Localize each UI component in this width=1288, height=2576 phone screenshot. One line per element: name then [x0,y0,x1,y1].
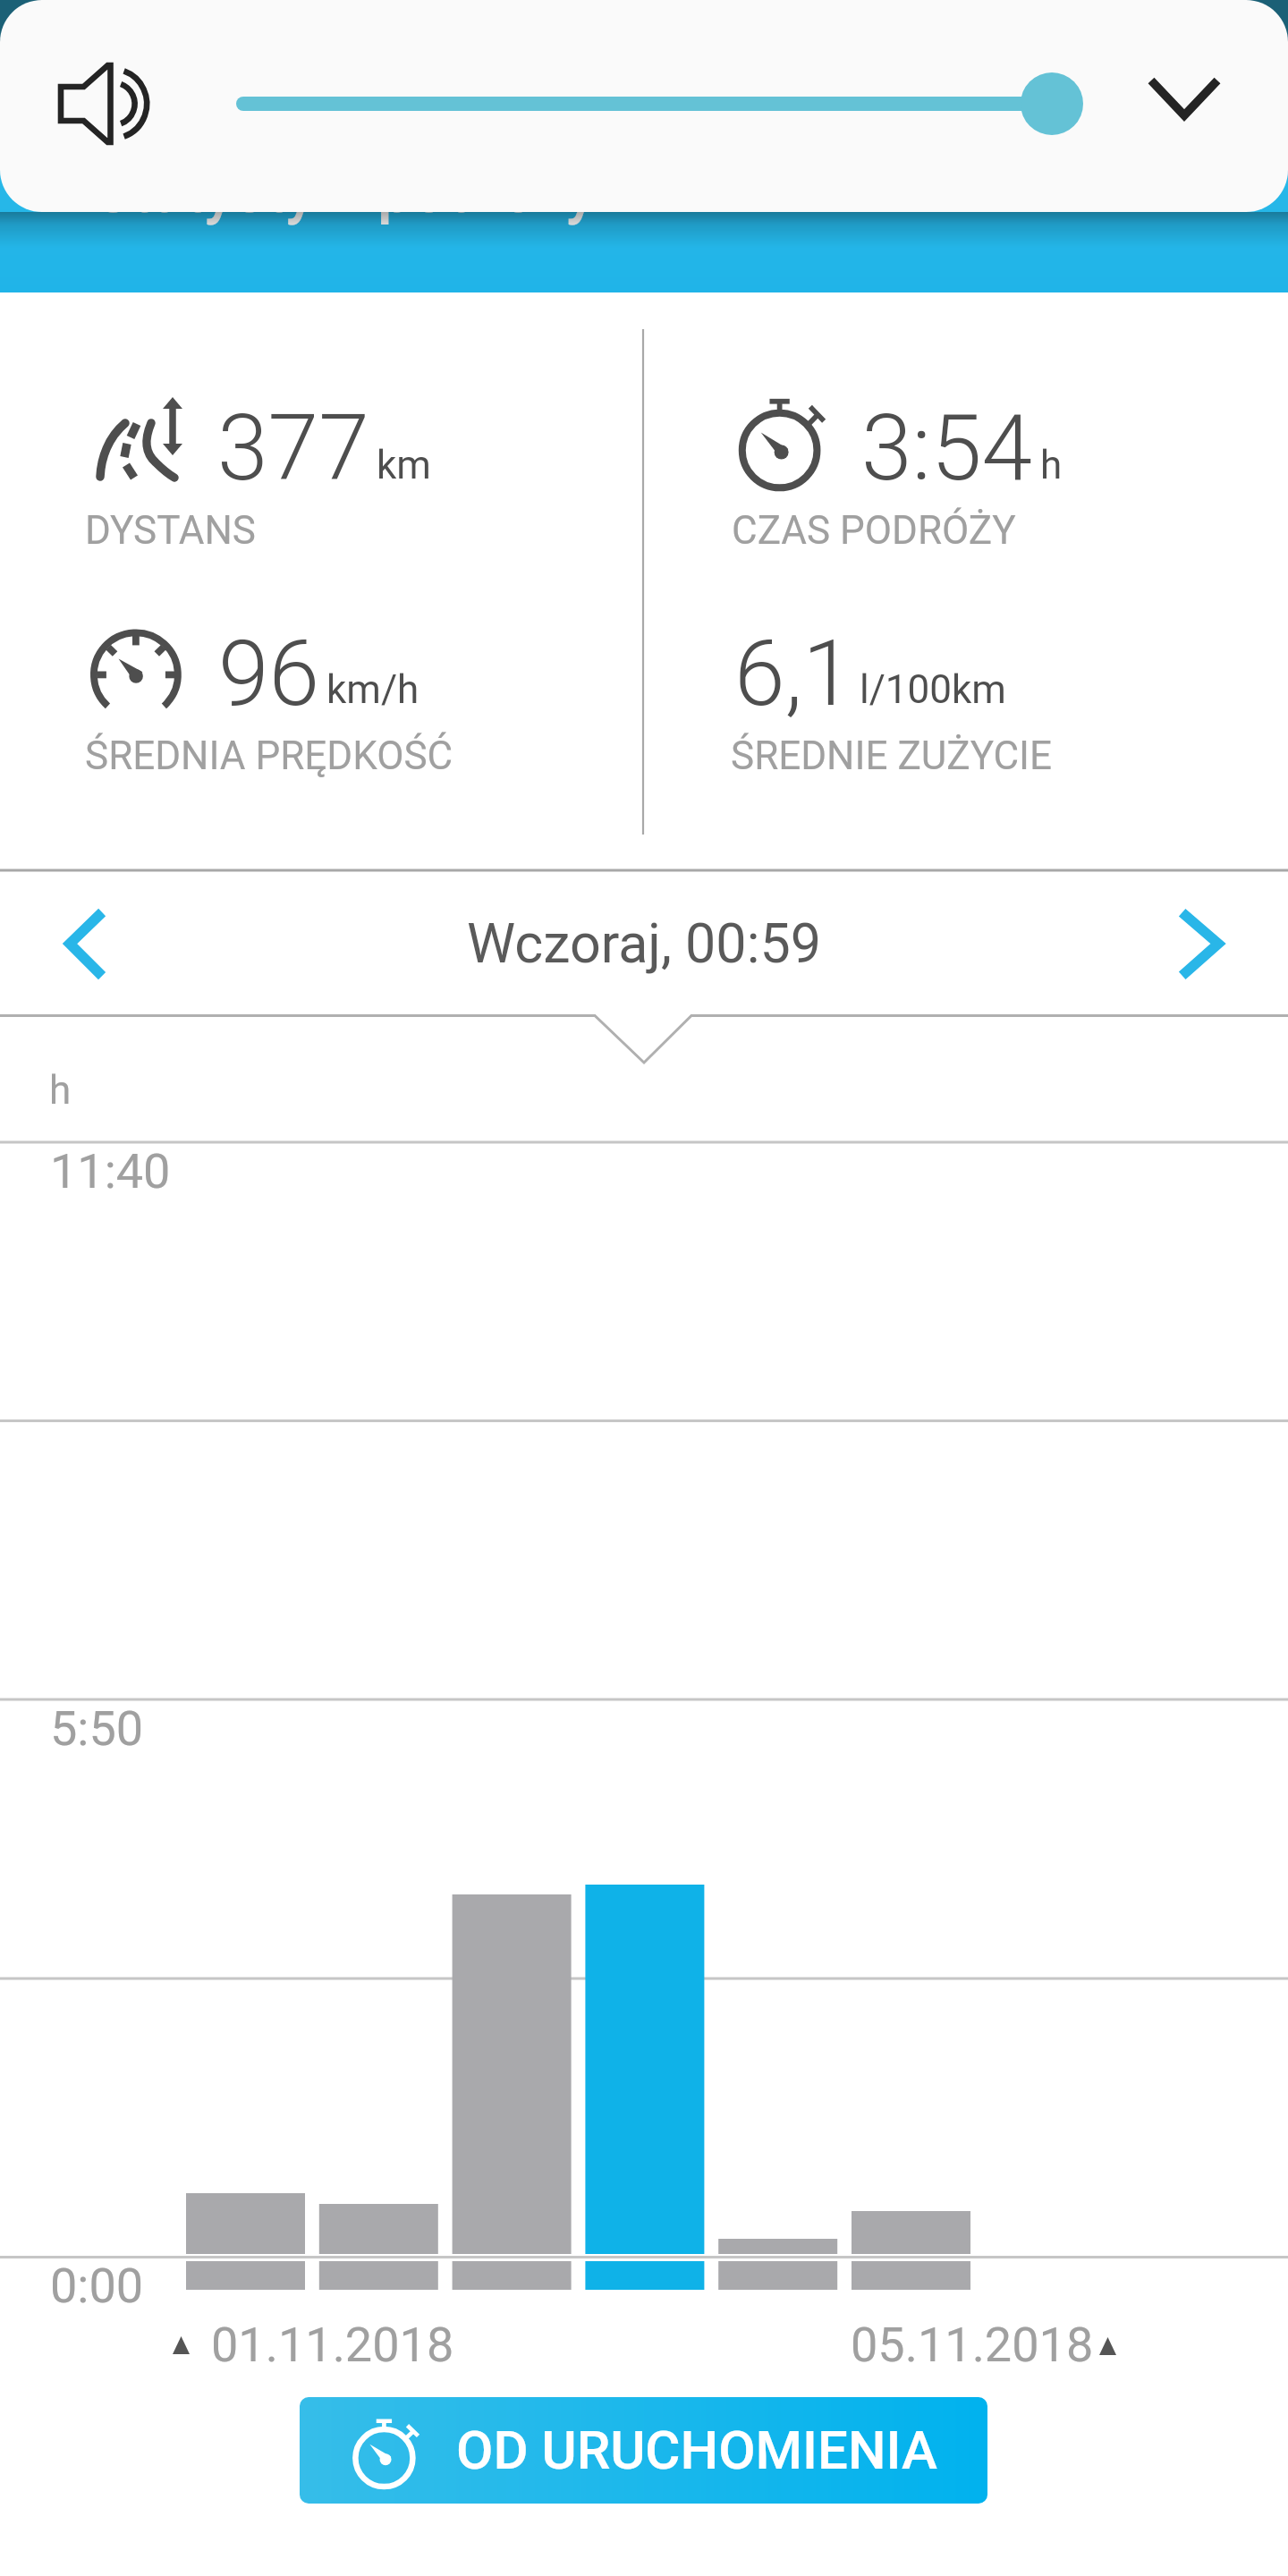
staticText: h [1040,442,1063,488]
staticText: CZAS PODRÓŻY [732,507,1016,554]
staticText: 01.11.2018 [211,2317,454,2373]
staticText: km/h [326,666,419,713]
staticText: Wczoraj, 00:59 [467,911,821,975]
staticText: 377 [217,394,369,502]
button[interactable]: Next trip [1150,880,1275,1005]
staticText: OD URUCHOMIENIA [456,2419,937,2481]
staticText: 0:00 [50,2258,144,2314]
staticText: Statystyki podróży [94,156,596,227]
staticText: DYSTANS [85,507,256,554]
button[interactable]: Previous trip [13,880,138,1005]
button[interactable]: Collapse volume panel [1097,14,1272,193]
staticText: km [377,442,431,488]
staticText: ŚREDNIA PRĘDKOŚĆ [85,733,453,779]
staticText: 3:54 [861,394,1033,502]
staticText: 96 [218,620,320,727]
button[interactable]: OD URUCHOMIENIA [300,2397,987,2504]
staticText: ŚREDNIE ZUŻYCIE [731,733,1053,779]
staticText: 11:40 [50,1143,171,1199]
staticText: h [49,1067,72,1114]
button[interactable]: Mute [16,14,191,193]
staticText: l/100km [860,666,1006,713]
staticText: 5:50 [50,1700,144,1757]
staticText: 6,1 [734,620,853,727]
button[interactable]: Volume slider [206,50,1084,157]
staticText: 05.11.2018 [851,2317,1094,2373]
